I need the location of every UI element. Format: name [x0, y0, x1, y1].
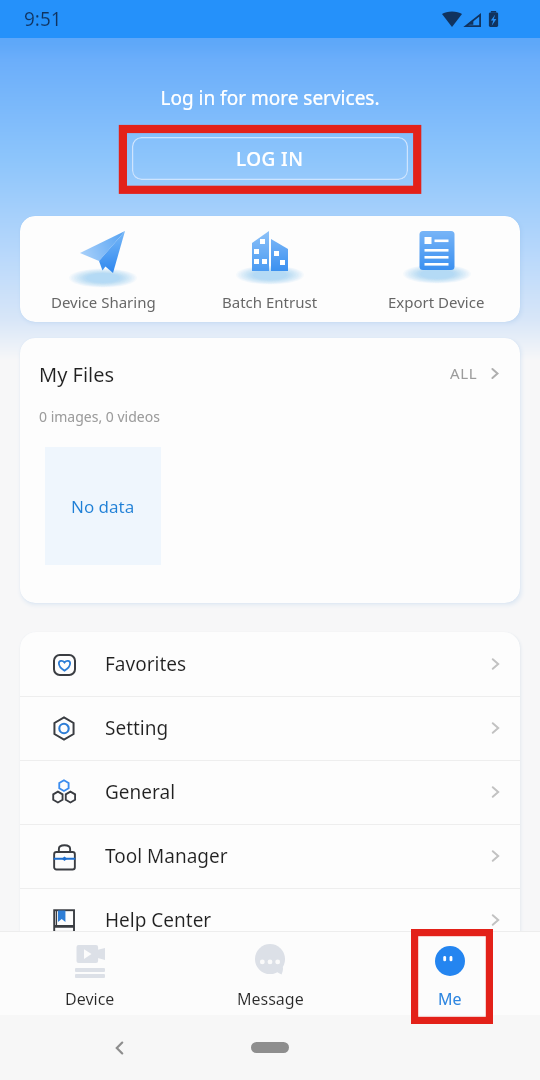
staticText: 0 images, 0 videos [39, 407, 160, 426]
button[interactable]: Device Sharing [20, 216, 186, 322]
staticText: 9:51 [24, 6, 62, 32]
staticText: LOG IN [236, 146, 304, 172]
staticText: Favorites [105, 651, 187, 677]
staticText: Tool Manager [105, 843, 228, 869]
staticText: Setting [105, 715, 169, 741]
button[interactable]: Setting [20, 696, 520, 760]
staticText: Device [65, 988, 115, 1010]
button[interactable]: Batch Entrust [186, 216, 353, 322]
button[interactable]: Tool Manager [20, 824, 520, 888]
staticText: Me [438, 988, 462, 1010]
staticText: General [105, 779, 176, 805]
staticText: ALL [450, 363, 478, 383]
button[interactable]: Favorites [20, 632, 520, 696]
staticText: Help Center [105, 907, 212, 933]
button[interactable]: Message [180, 931, 360, 1015]
staticText: Message [237, 988, 304, 1010]
button[interactable]: Export Device [353, 216, 520, 322]
staticText: Batch Entrust [222, 292, 318, 312]
staticText: Export Device [388, 292, 485, 312]
button[interactable]: Help Center [20, 888, 520, 952]
button[interactable]: General [20, 760, 520, 824]
button[interactable]: Me [360, 931, 540, 1015]
button[interactable]: No data [45, 447, 161, 565]
button[interactable]: ALL [450, 363, 502, 383]
button[interactable]: Home [251, 1042, 289, 1053]
staticText: No data [71, 495, 135, 518]
staticText: Device Sharing [51, 292, 156, 312]
button[interactable]: Device [0, 931, 180, 1015]
button[interactable]: LOG IN [132, 137, 408, 180]
staticText: Log in for more services. [0, 85, 540, 111]
button[interactable]: Back [104, 1032, 136, 1064]
staticText: My Files [39, 361, 115, 388]
